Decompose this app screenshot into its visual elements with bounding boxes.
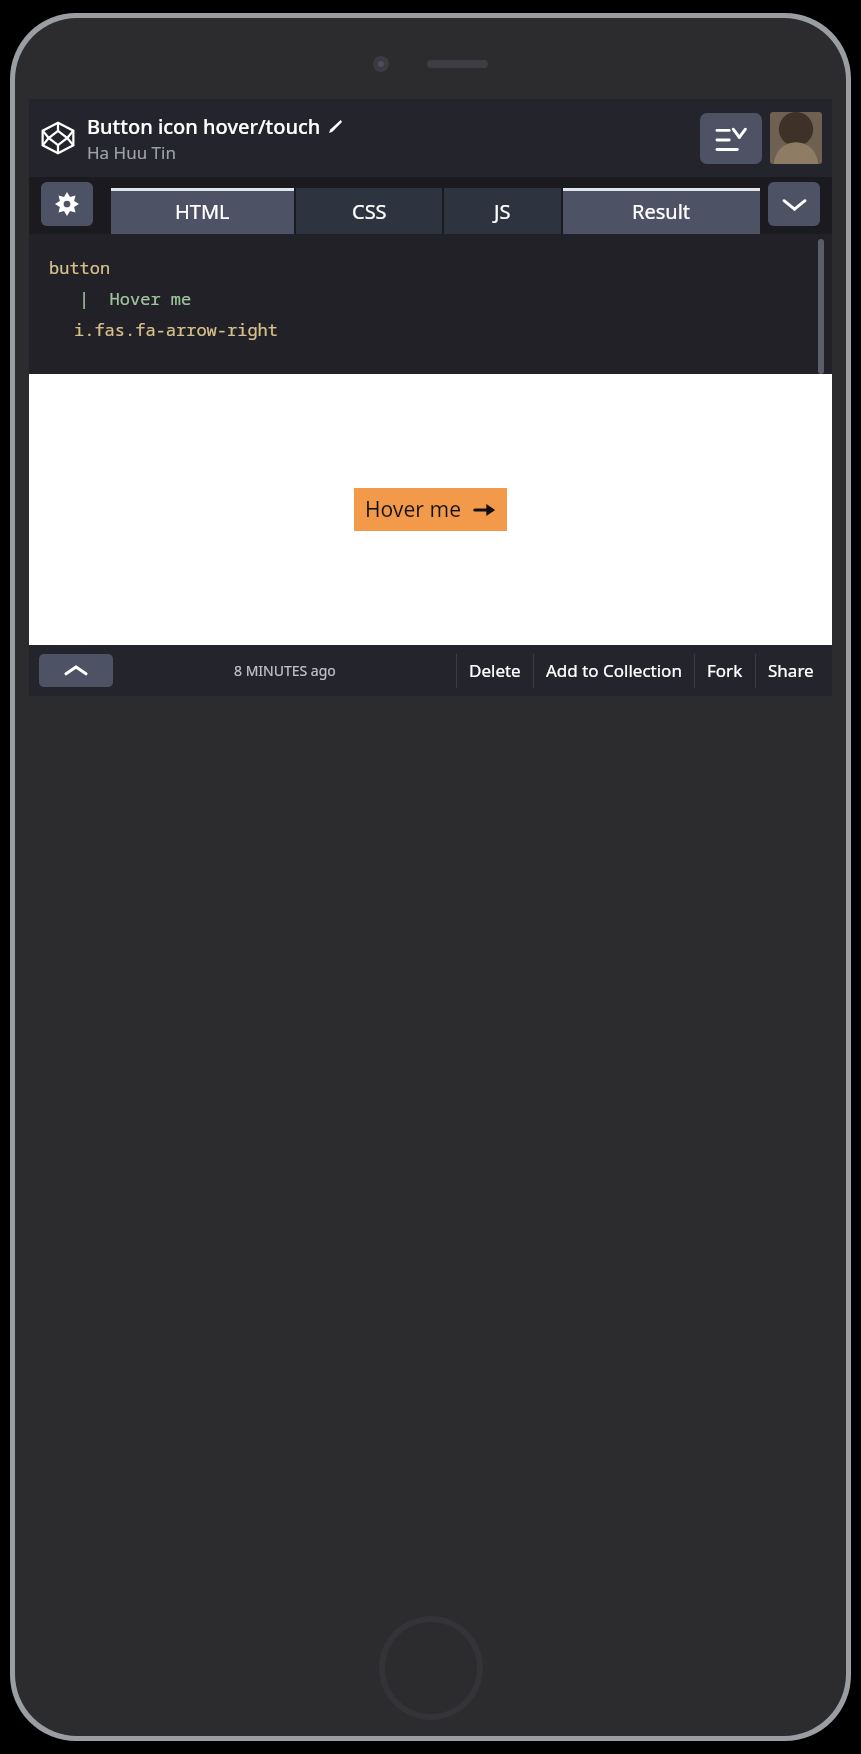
staticText: Button icon hover/touch (87, 113, 321, 140)
button[interactable]: Collapse (39, 654, 113, 687)
button[interactable]: CodePen (41, 121, 75, 155)
staticText: Hover me (365, 495, 461, 524)
staticText: 8 MINUTES ago (234, 661, 336, 680)
button[interactable]: Share (756, 645, 826, 696)
button[interactable]: HTML (111, 188, 294, 234)
button[interactable]: Add to Collection (534, 645, 694, 696)
staticText: i.fas.fa-arrow-right (74, 318, 278, 341)
staticText: CSS (352, 198, 387, 225)
button[interactable]: Menu (700, 113, 762, 164)
staticText: JS (494, 198, 511, 225)
button[interactable]: Profile (770, 112, 822, 164)
staticText: Ha Huu Tin (87, 141, 176, 164)
button[interactable]: Result (563, 188, 760, 234)
staticText: Share (768, 659, 814, 682)
button[interactable]: Settings (41, 182, 93, 226)
staticText: Fork (707, 659, 743, 682)
button[interactable]: JS (444, 188, 561, 234)
button[interactable]: Expand (768, 182, 820, 226)
staticText: Delete (469, 659, 521, 682)
button[interactable]: CSS (296, 188, 442, 234)
staticText: button (49, 256, 111, 279)
staticText: HTML (175, 198, 230, 225)
button[interactable]: Fork (695, 645, 755, 696)
staticText: Add to Collection (546, 659, 682, 682)
button[interactable]: Hover me (354, 488, 507, 531)
staticText: Result (632, 198, 691, 225)
button[interactable]: Delete (457, 645, 533, 696)
staticText: | Hover me (79, 287, 192, 310)
